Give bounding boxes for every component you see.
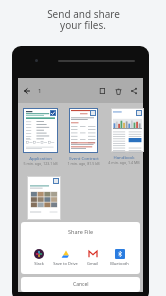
staticText: Gmail: [87, 261, 98, 266]
button[interactable]: Bluetooth: [106, 248, 133, 266]
staticText: 1: [38, 87, 42, 95]
button[interactable]: Application: [19, 108, 62, 166]
staticText: Send and share: [47, 7, 120, 21]
button[interactable]: Select all: [94, 83, 110, 99]
button[interactable]: Save to Drive: [52, 248, 79, 266]
staticText: Cancel: [73, 281, 89, 288]
staticText: Application: [29, 155, 52, 161]
button[interactable]: Back: [21, 85, 32, 96]
staticText: Bluetooth: [110, 261, 129, 266]
staticText: Share File: [68, 228, 93, 235]
staticText: 1 min. ago, 81.5 kB: [67, 161, 100, 166]
button[interactable]: Cancel: [21, 277, 140, 292]
staticText: your files.: [60, 18, 106, 32]
staticText: Save to Drive: [53, 261, 78, 266]
staticText: 5 min. ago, 123.1 kB: [23, 161, 58, 166]
button[interactable]: Delete: [110, 83, 126, 99]
button[interactable]: Menu: [19, 176, 62, 228]
button[interactable]: Gmail: [79, 248, 106, 266]
staticText: Slack: [34, 261, 44, 266]
staticText: Handbook: [113, 154, 135, 160]
button[interactable]: Handbook: [105, 108, 143, 165]
staticText: 4 min. ago, 1.4 MB: [108, 160, 140, 165]
button[interactable]: Event Contract: [62, 108, 105, 166]
staticText: Event Contract: [69, 155, 99, 161]
button[interactable]: Share: [126, 83, 142, 99]
button[interactable]: Slack: [25, 248, 52, 266]
